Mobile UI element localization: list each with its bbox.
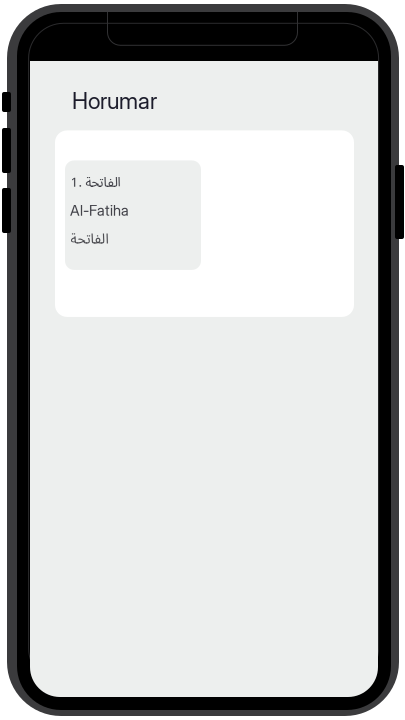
staticText: الفاتحة	[70, 224, 108, 254]
staticText: الفاتحة .1	[70, 168, 120, 197]
staticText: Al-Fatiha	[70, 202, 129, 219]
staticText: Horumar	[72, 87, 157, 114]
button[interactable]: الفاتحة .1	[55, 130, 354, 317]
